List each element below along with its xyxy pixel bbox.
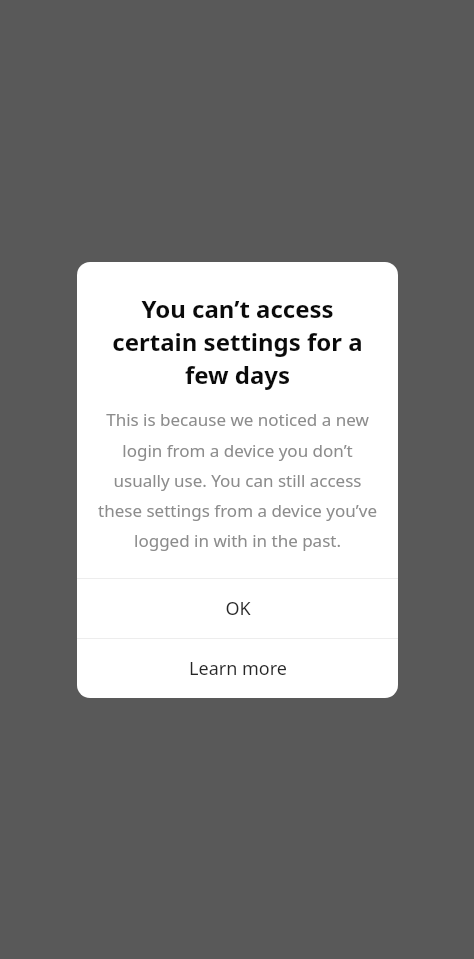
button[interactable]: Learn more	[77, 639, 398, 698]
staticText: Learn more	[189, 656, 287, 681]
button[interactable]: OK	[77, 579, 398, 638]
staticText: You can’t access certain settings for a …	[97, 292, 378, 391]
staticText: This is because we noticed a new login f…	[97, 408, 378, 552]
staticText: OK	[225, 596, 251, 621]
